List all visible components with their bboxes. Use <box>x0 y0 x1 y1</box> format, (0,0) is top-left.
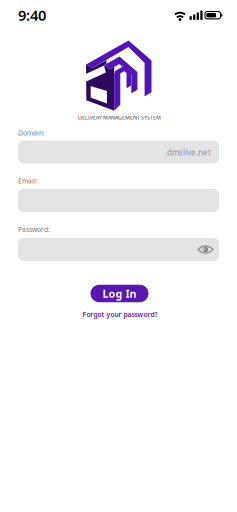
staticText: DELIVERY MANAGEMENT SYSTEM <box>78 114 161 121</box>
staticText: Email: <box>18 177 38 185</box>
staticText: Domain: <box>18 129 45 137</box>
staticText: Log In <box>102 286 136 301</box>
staticText: 9:40 <box>18 5 46 25</box>
staticText: Password: <box>18 225 50 234</box>
staticText: Forgot your password? <box>82 310 157 319</box>
staticText: .dmslive.net <box>165 147 211 158</box>
